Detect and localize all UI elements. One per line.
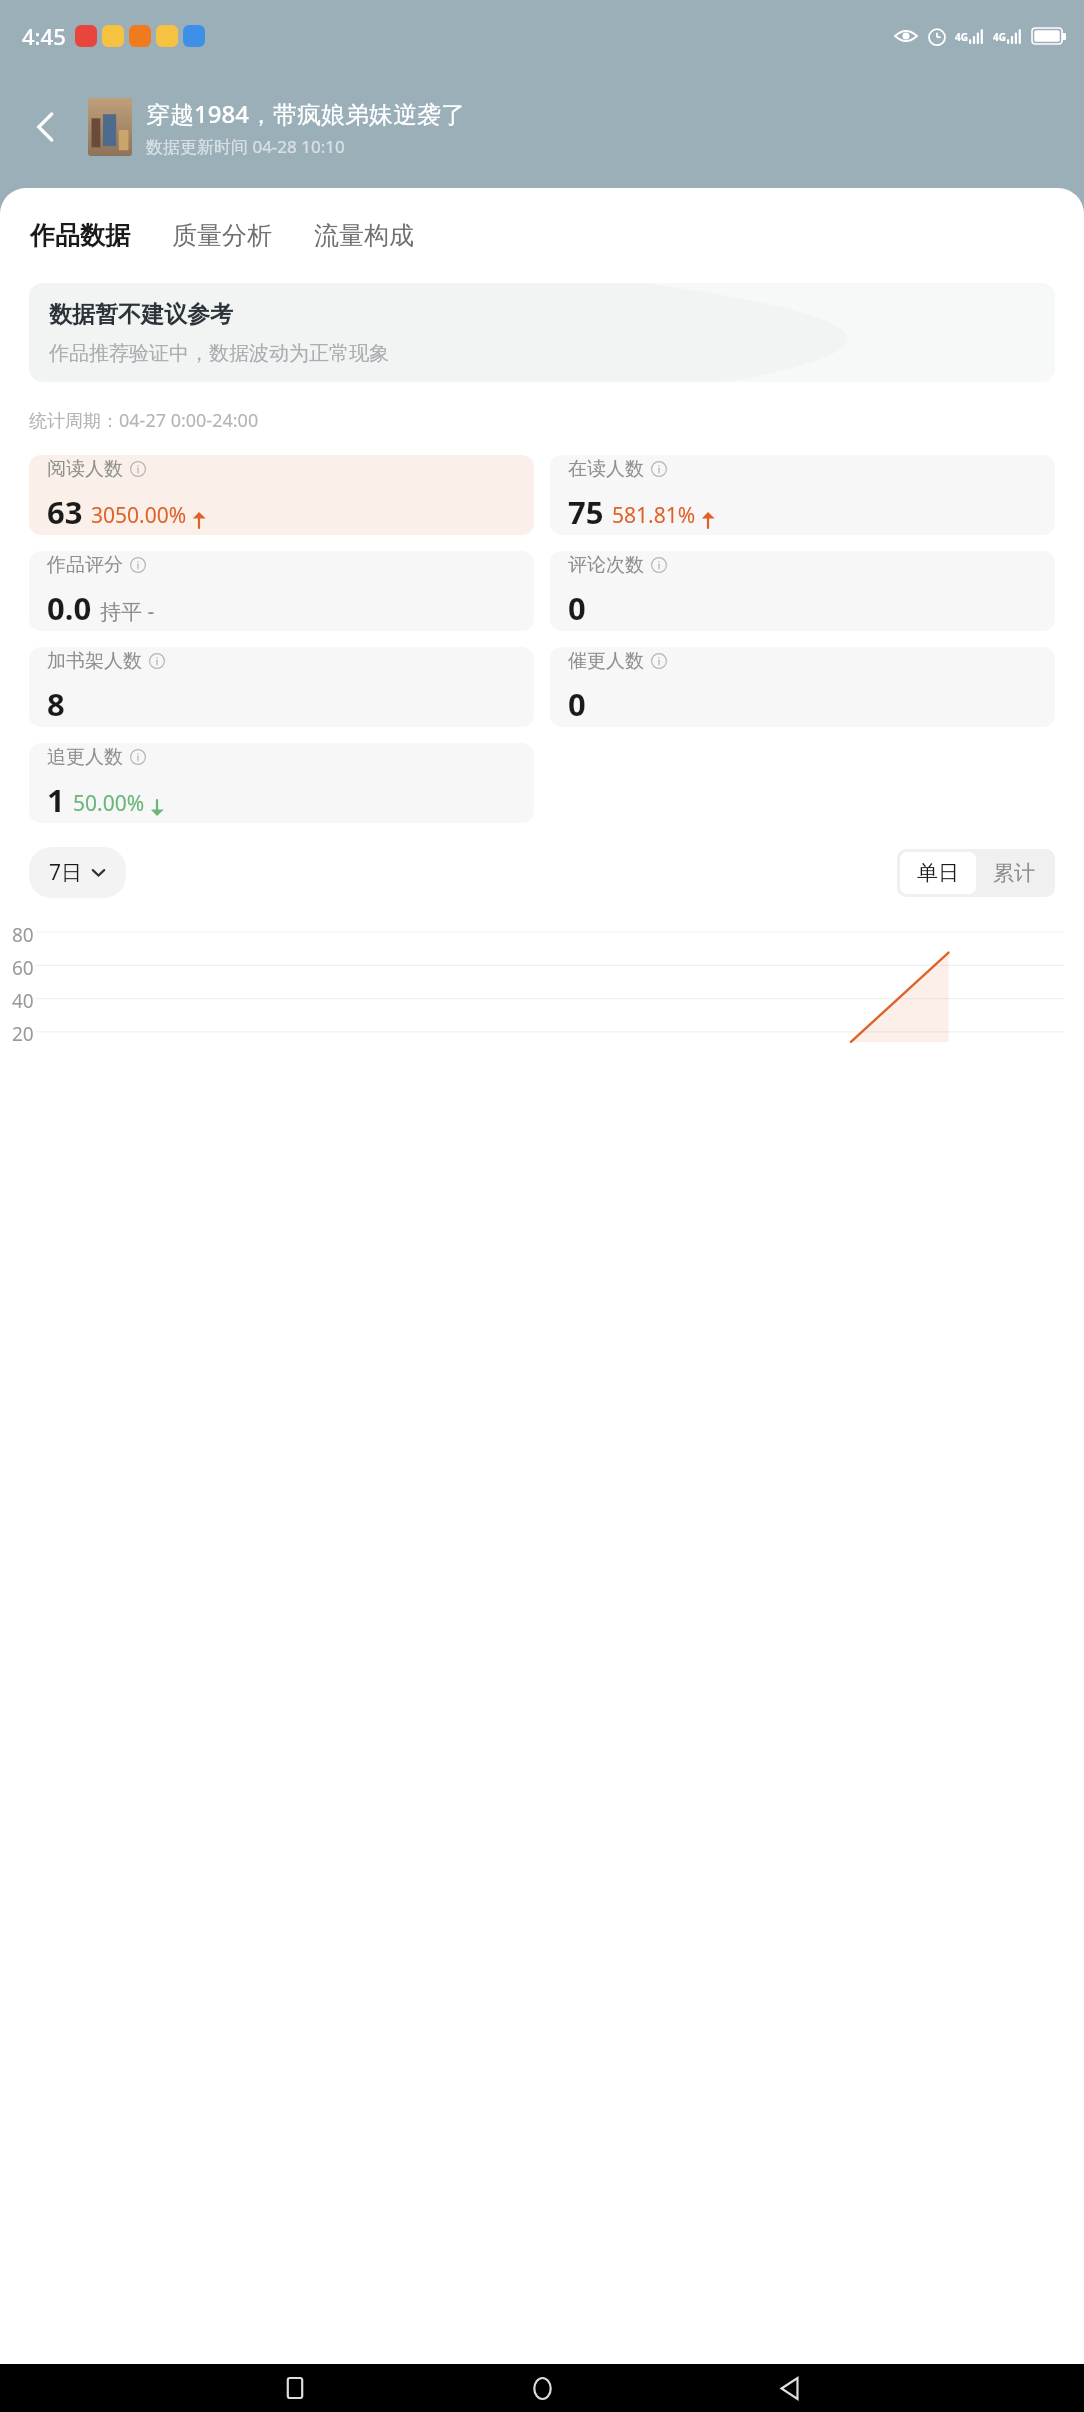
button[interactable]: 作品评分 xyxy=(29,551,534,631)
button[interactable]: 单日 xyxy=(900,852,976,894)
staticText: 4G xyxy=(993,30,1006,44)
button[interactable]: Back xyxy=(14,95,78,159)
staticText: 加书架人数 xyxy=(47,649,142,673)
staticText: 0 xyxy=(568,683,586,725)
button[interactable]: 累计 xyxy=(976,852,1052,894)
staticText: 75 xyxy=(568,491,604,533)
staticText: 20 xyxy=(12,1021,46,1047)
staticText: 作品推荐验证中，数据波动为正常现象 xyxy=(49,341,389,366)
staticText: 8 xyxy=(47,683,65,725)
staticText: 1 xyxy=(47,779,65,821)
staticText: 持平 - xyxy=(100,597,155,626)
staticText: 4:45 xyxy=(22,21,66,51)
staticText: 4G xyxy=(955,30,968,44)
staticText: 统计周期：04-27 0:00-24:00 xyxy=(29,408,259,433)
staticText: 作品评分 xyxy=(47,553,123,577)
staticText: 数据暂不建议参考 xyxy=(49,300,233,329)
staticText: 催更人数 xyxy=(568,649,644,673)
button[interactable]: 质量分析 xyxy=(164,216,280,255)
button[interactable]: 催更人数 xyxy=(550,647,1055,727)
button[interactable]: 数据暂不建议参考 xyxy=(29,283,1055,382)
staticText: 追更人数 xyxy=(47,745,123,769)
staticText: 评论次数 xyxy=(568,553,644,577)
button[interactable]: 作品数据 xyxy=(22,216,138,255)
staticText: 63 xyxy=(47,491,83,533)
staticText: 3050.00% xyxy=(91,501,187,530)
button[interactable]: 阅读人数 xyxy=(29,455,534,535)
staticText: 作品数据 xyxy=(30,220,130,251)
button[interactable]: 7日 xyxy=(29,847,126,898)
staticText: 穿越1984，带疯娘弟妹逆袭了 xyxy=(146,97,465,130)
staticText: 50.00% xyxy=(73,789,145,818)
button[interactable]: Back xyxy=(767,2366,811,2410)
staticText: 80 xyxy=(12,922,46,948)
staticText: 在读人数 xyxy=(568,457,644,481)
button[interactable]: 流量构成 xyxy=(306,216,422,255)
staticText: 数据更新时间 04-28 10:10 xyxy=(146,135,345,158)
staticText: 40 xyxy=(12,988,46,1014)
staticText: 0.0 xyxy=(47,587,92,629)
staticText: 质量分析 xyxy=(172,220,272,251)
button[interactable]: Home xyxy=(520,2366,564,2410)
staticText: 60 xyxy=(12,955,46,981)
button[interactable]: 加书架人数 xyxy=(29,647,534,727)
button[interactable]: 在读人数 xyxy=(550,455,1055,535)
staticText: 0 xyxy=(568,587,586,629)
staticText: 累计 xyxy=(993,860,1035,886)
staticText: 流量构成 xyxy=(314,220,414,251)
button[interactable]: 评论次数 xyxy=(550,551,1055,631)
staticText: 581.81% xyxy=(612,501,696,530)
staticText: 7日 xyxy=(49,858,83,887)
staticText: 阅读人数 xyxy=(47,457,123,481)
button[interactable]: Recent apps xyxy=(273,2366,317,2410)
button[interactable]: 追更人数 xyxy=(29,743,534,823)
staticText: 单日 xyxy=(917,860,959,886)
